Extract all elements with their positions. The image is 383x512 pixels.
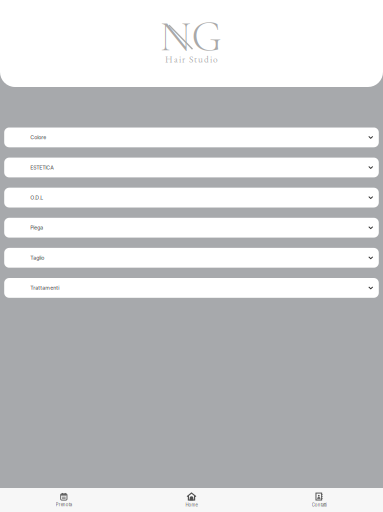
- button[interactable]: Home: [128, 488, 255, 512]
- button[interactable]: ESTETICA: [4, 158, 379, 177]
- staticText: Prenota: [56, 502, 72, 507]
- button[interactable]: Taglio: [4, 248, 379, 268]
- staticText: N: [160, 11, 191, 62]
- staticText: Piega: [30, 225, 43, 231]
- button[interactable]: Contatti: [255, 488, 383, 512]
- staticText: O.D.L: [30, 194, 43, 201]
- staticText: Contatti: [312, 502, 327, 507]
- staticText: Hair Studio: [165, 53, 218, 65]
- button[interactable]: O.D.L: [4, 188, 379, 207]
- staticText: Trattamenti: [30, 285, 59, 291]
- button[interactable]: Trattamenti: [4, 278, 379, 298]
- button[interactable]: Piega: [4, 218, 379, 238]
- button[interactable]: Prenota: [0, 488, 128, 512]
- staticText: G: [191, 11, 221, 62]
- staticText: Colore: [30, 134, 46, 141]
- staticText: Taglio: [30, 255, 44, 261]
- staticText: ESTETICA: [30, 164, 54, 171]
- staticText: Home: [185, 502, 197, 507]
- button[interactable]: Colore: [4, 127, 379, 147]
